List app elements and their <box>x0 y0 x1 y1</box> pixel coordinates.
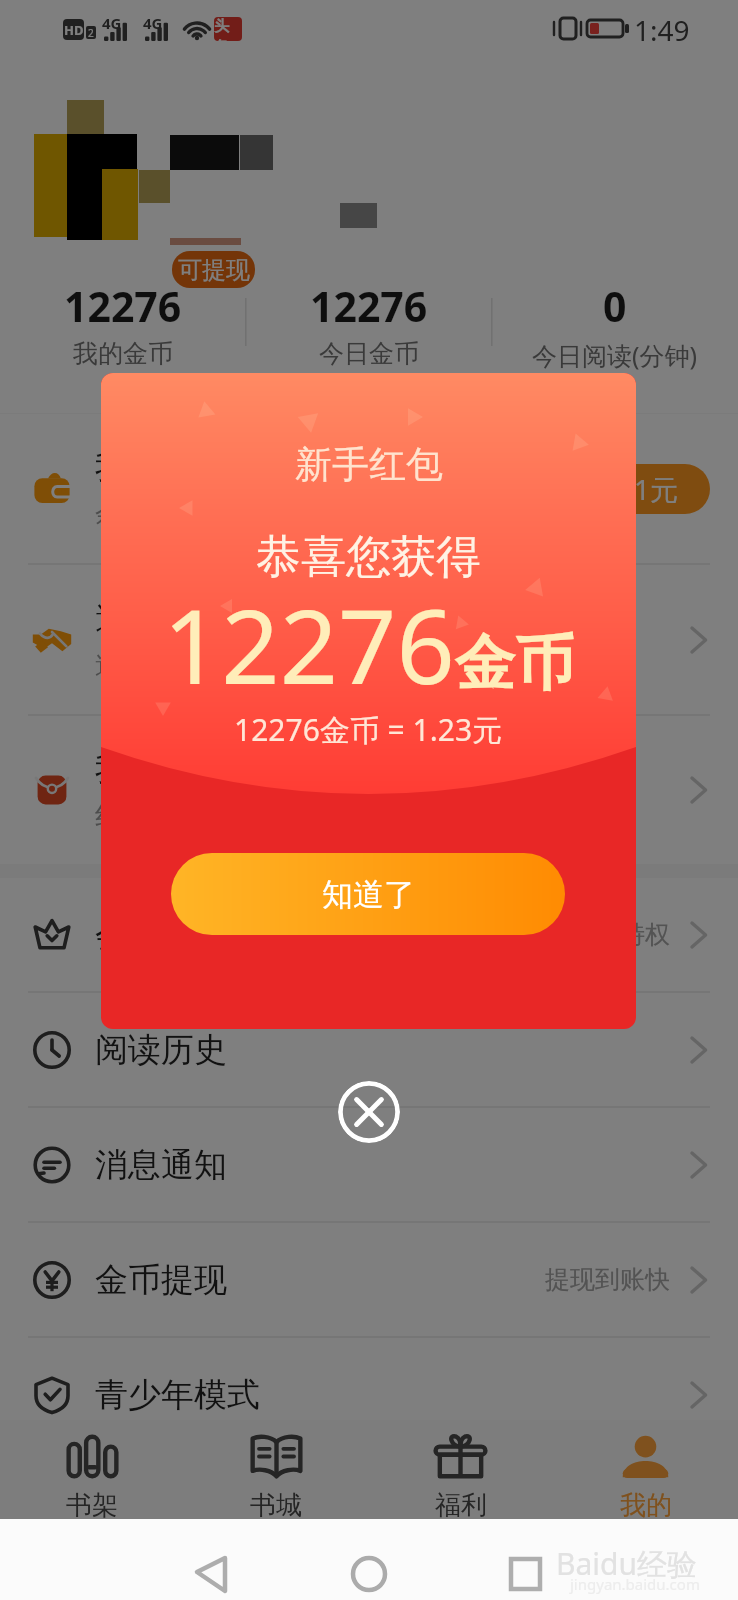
staticText: 红包好礼领不停 <box>95 800 277 833</box>
button[interactable]: 书架 <box>0 1420 184 1519</box>
button[interactable]: 满1元 <box>575 464 710 514</box>
button[interactable]: 关闭 <box>338 1081 400 1143</box>
staticText: 我的金币 <box>73 338 173 369</box>
staticText: 福利 <box>435 1489 487 1519</box>
staticText: 2 <box>88 26 94 39</box>
staticText: 会员中心 <box>95 914 227 956</box>
staticText: 满1元 <box>606 470 679 508</box>
button[interactable]: 返回 <box>180 1540 244 1600</box>
staticText: 今日金币 <box>319 338 419 369</box>
button[interactable]: 青少年模式 <box>0 1338 738 1451</box>
staticText: 12276 <box>64 278 182 334</box>
staticText: 12276 <box>163 575 455 714</box>
button[interactable]: 知道了 <box>171 853 565 935</box>
staticText: 阅读历史 <box>95 1029 227 1071</box>
staticText: 可提现 <box>178 255 250 285</box>
staticText: 邀请越多赚越多 <box>95 649 277 682</box>
button[interactable]: 主页 <box>337 1540 401 1600</box>
staticText: HD <box>64 21 84 39</box>
staticText: 知道了 <box>322 875 415 914</box>
staticText: 金币 <box>455 626 575 702</box>
staticText: 余额可提现 <box>95 498 225 531</box>
staticText: 头条 <box>214 17 242 41</box>
button[interactable]: 我的红包 <box>0 716 738 864</box>
staticText: 12276金币 = 1.23元 <box>234 709 503 750</box>
staticText: 0 <box>603 278 627 334</box>
staticText: 邀请好友 <box>95 597 227 639</box>
button[interactable]: 最近任务 <box>494 1540 558 1600</box>
button[interactable]: 邀请好友 <box>0 565 738 714</box>
button[interactable]: 0 <box>492 278 738 372</box>
button[interactable]: 福利 <box>368 1420 553 1519</box>
staticText: 新手红包 <box>295 441 443 488</box>
button[interactable]: 我的钱包 <box>0 414 738 563</box>
button[interactable]: 消息通知 <box>0 1108 738 1221</box>
button[interactable]: 金币提现 <box>0 1223 738 1336</box>
staticText: 12276 <box>310 278 428 334</box>
staticText: 我的 <box>620 1489 672 1519</box>
staticText: 消息通知 <box>95 1144 227 1186</box>
staticText: 我的红包 <box>95 748 227 790</box>
staticText: 1:49 <box>634 11 690 49</box>
staticText: jingyan.baidu.com <box>570 1574 700 1594</box>
staticText: 今日阅读(分钟) <box>532 338 698 372</box>
staticText: 提现到账快 <box>545 1264 670 1295</box>
staticText: 恭喜您获得 <box>256 529 481 586</box>
staticText: 我的钱包 <box>95 446 227 488</box>
staticText: 书城 <box>250 1489 302 1519</box>
staticText: 青少年模式 <box>95 1374 260 1416</box>
staticText: 4G <box>102 13 122 33</box>
staticText: 金币提现 <box>95 1259 227 1301</box>
button[interactable]: 会员中心 <box>0 878 738 991</box>
button[interactable]: 可提现 <box>172 251 255 288</box>
staticText: Baidu经验 <box>556 1543 698 1584</box>
button[interactable]: 12276 <box>0 278 246 369</box>
button[interactable]: 我的 <box>553 1420 738 1519</box>
button[interactable]: 书城 <box>184 1420 368 1519</box>
button[interactable]: 12276 <box>246 278 492 369</box>
staticText: 查看会员特权 <box>520 919 670 950</box>
button[interactable]: 阅读历史 <box>0 993 738 1106</box>
staticText: 4G <box>143 13 163 33</box>
staticText: 书架 <box>66 1489 118 1519</box>
